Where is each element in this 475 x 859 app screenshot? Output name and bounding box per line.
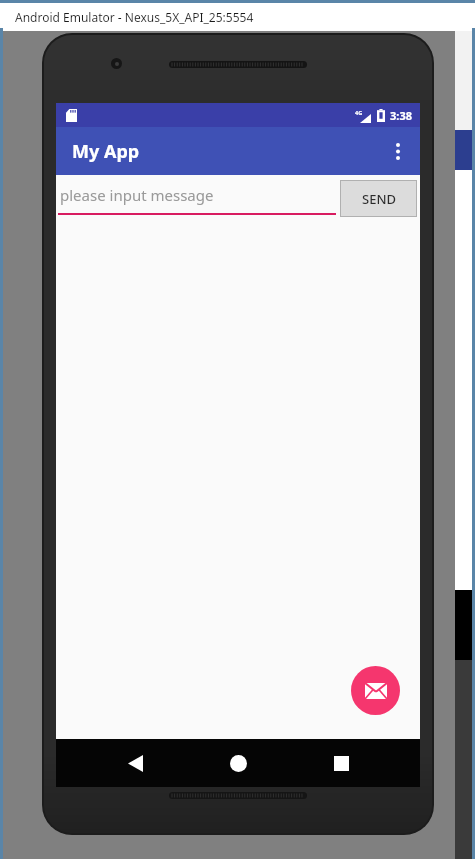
- staticText: Android Emulator - Nexus_5X_API_25:5554: [15, 9, 254, 25]
- button[interactable]: Recent apps: [317, 739, 365, 787]
- button[interactable]: Back: [111, 739, 159, 787]
- staticText: please input message: [60, 185, 214, 205]
- staticText: My App: [72, 139, 140, 164]
- staticText: 3:38: [390, 108, 412, 123]
- staticText: 4G: [355, 109, 363, 116]
- button[interactable]: Send email: [351, 666, 400, 715]
- button[interactable]: please input message: [58, 177, 336, 219]
- button[interactable]: SEND: [340, 180, 417, 217]
- button[interactable]: More options: [376, 129, 420, 173]
- staticText: SEND: [362, 190, 396, 208]
- button[interactable]: Home: [214, 739, 262, 787]
